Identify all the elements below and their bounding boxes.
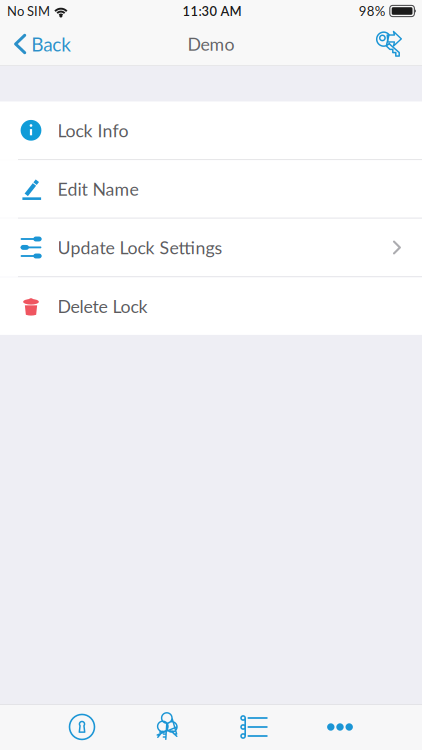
button[interactable]: Delete Lock xyxy=(0,277,422,335)
staticText: Update Lock Settings xyxy=(57,237,222,258)
button[interactable]: Activity xyxy=(211,704,297,750)
button[interactable]: Back xyxy=(0,22,81,66)
button[interactable]: Update Lock Settings xyxy=(0,219,422,276)
staticText: Back xyxy=(31,33,71,55)
staticText: 98% xyxy=(359,3,386,19)
button[interactable]: Share key xyxy=(366,22,422,66)
staticText: Lock Info xyxy=(57,120,128,141)
button[interactable]: More xyxy=(297,704,383,750)
staticText: Delete Lock xyxy=(57,295,147,317)
button[interactable]: Locks xyxy=(39,704,125,750)
button[interactable]: Lock Info xyxy=(0,101,422,159)
staticText: 11:30 AM xyxy=(182,3,241,19)
staticText: Edit Name xyxy=(57,178,138,200)
staticText: No SIM xyxy=(7,3,50,19)
button[interactable]: Keys xyxy=(125,704,211,750)
button[interactable]: Edit Name xyxy=(0,160,422,218)
staticText: Demo xyxy=(187,33,234,55)
